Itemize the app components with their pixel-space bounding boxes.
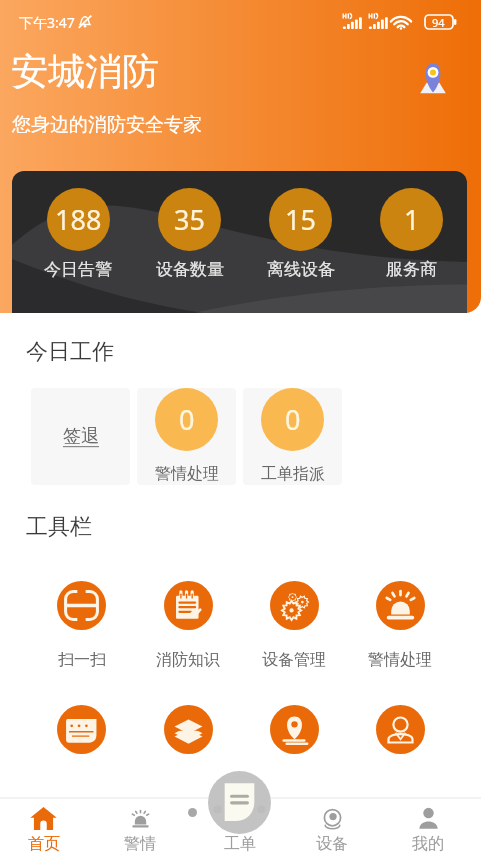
staticText: 设备管理 <box>262 650 326 670</box>
staticText: 签退 <box>63 425 99 448</box>
staticText: 警情处理 <box>155 464 219 484</box>
button[interactable]: 首页 <box>0 799 92 858</box>
staticText: 15 <box>285 201 316 238</box>
button[interactable]: 0 <box>137 388 236 485</box>
staticText: 1 <box>404 201 420 238</box>
button[interactable]: 图层 <box>135 705 241 754</box>
button[interactable]: 扫一扫 <box>28 581 135 670</box>
staticText: 下午3:47 <box>19 13 75 32</box>
staticText: 188 <box>55 201 102 238</box>
button[interactable]: 0 <box>243 388 342 485</box>
button[interactable]: 警情 <box>92 799 188 858</box>
button[interactable]: Map location <box>413 58 453 98</box>
staticText: 35 <box>174 201 205 238</box>
button[interactable]: 消防知识 <box>135 581 241 670</box>
staticText: 扫一扫 <box>58 650 106 670</box>
staticText: 安城消防 <box>11 48 159 95</box>
button[interactable]: 1 <box>356 171 467 313</box>
staticText: 首页 <box>28 834 60 854</box>
button[interactable]: 设备 <box>284 799 380 858</box>
staticText: 我的 <box>412 834 444 854</box>
staticText: 设备数量 <box>156 259 224 280</box>
button[interactable]: 人员 <box>347 705 453 754</box>
button[interactable]: 我的 <box>380 799 476 858</box>
staticText: 服务商 <box>386 259 437 280</box>
button[interactable]: 设备管理 <box>241 581 347 670</box>
button[interactable]: 35 <box>134 171 245 313</box>
staticText: 工单指派 <box>261 464 325 484</box>
button[interactable]: 消息 <box>28 705 135 754</box>
staticText: 0 <box>179 401 195 438</box>
staticText: 离线设备 <box>267 259 335 280</box>
button[interactable]: 15 <box>245 171 356 313</box>
staticText: 工具栏 <box>26 513 92 541</box>
button[interactable]: 188 <box>22 171 134 313</box>
staticText: 警情处理 <box>368 650 432 670</box>
staticText: 设备 <box>316 834 348 854</box>
button[interactable] <box>208 771 271 834</box>
button[interactable]: 签退 <box>31 388 130 485</box>
staticText: 94 <box>432 15 445 30</box>
staticText: 工单 <box>218 834 262 854</box>
button[interactable]: 警情处理 <box>347 581 453 670</box>
button[interactable]: 定位 <box>241 705 347 754</box>
staticText: 您身边的消防安全专家 <box>12 113 202 137</box>
staticText: 消防知识 <box>156 650 220 670</box>
staticText: 0 <box>285 401 301 438</box>
staticText: 警情 <box>124 834 156 854</box>
staticText: 今日工作 <box>26 338 114 366</box>
staticText: 今日告警 <box>44 259 112 280</box>
